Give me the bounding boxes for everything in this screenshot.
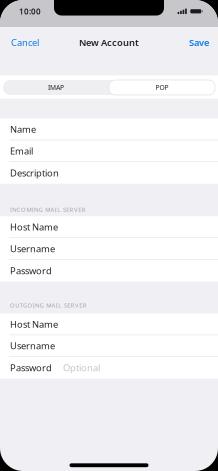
staticText: Email xyxy=(10,145,33,157)
staticText: Host Name xyxy=(10,318,58,330)
button[interactable]: Host Name xyxy=(0,313,218,335)
staticText: 10:00 xyxy=(19,6,41,17)
staticText: Host Name xyxy=(10,221,58,233)
staticText: Username xyxy=(10,339,55,352)
button[interactable]: IMAP xyxy=(3,80,109,95)
staticText: Description xyxy=(10,167,59,179)
button[interactable]: Save xyxy=(180,27,218,58)
button[interactable]: Description xyxy=(0,162,218,184)
button[interactable]: Password xyxy=(0,357,218,379)
button[interactable]: Password xyxy=(0,260,218,281)
staticText: Save xyxy=(189,36,209,49)
button[interactable]: POP xyxy=(109,80,215,95)
staticText: Username xyxy=(10,242,55,255)
button[interactable]: Cancel xyxy=(0,27,50,58)
staticText: New Account xyxy=(79,36,139,49)
staticText: POP xyxy=(155,83,168,92)
staticText: INCOMING MAIL SERVER xyxy=(10,205,86,213)
staticText: Password xyxy=(10,264,52,277)
staticText: OUTGOING MAIL SERVER xyxy=(10,301,87,309)
staticText: Optional xyxy=(63,361,100,374)
staticText: Cancel xyxy=(11,36,39,49)
button[interactable]: Username xyxy=(0,238,218,260)
button[interactable]: Email xyxy=(0,140,218,162)
button[interactable]: Username xyxy=(0,335,218,357)
button[interactable]: Name xyxy=(0,119,218,140)
staticText: Name xyxy=(10,123,36,135)
staticText: Password xyxy=(10,361,52,374)
staticText: IMAP xyxy=(48,83,64,92)
button[interactable]: Host Name xyxy=(0,216,218,238)
